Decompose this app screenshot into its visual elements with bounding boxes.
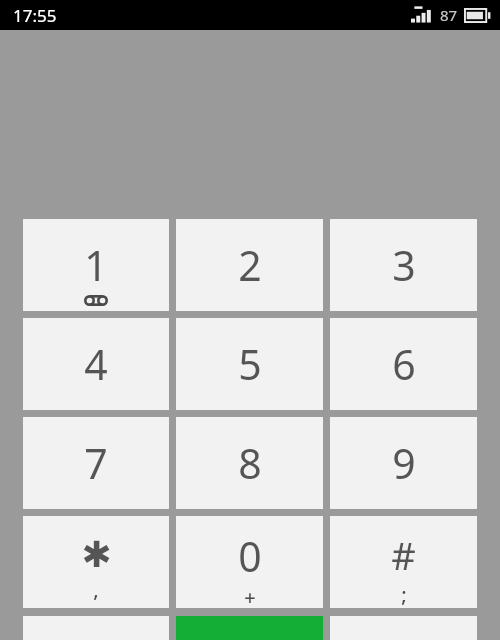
button[interactable]: 7 — [23, 417, 169, 509]
staticText: 4 — [84, 336, 108, 392]
button[interactable]: ✱ — [23, 516, 169, 608]
button[interactable]: 0 — [176, 516, 323, 608]
staticText: 1 — [84, 237, 108, 293]
staticText: 5 — [238, 336, 262, 392]
staticText: 0 — [238, 528, 262, 584]
staticText: , — [93, 576, 99, 603]
staticText: # — [391, 529, 416, 581]
button[interactable]: 3 — [330, 219, 477, 311]
staticText: + — [244, 584, 256, 608]
staticText: ✱ — [81, 534, 112, 576]
button[interactable]: 2 — [176, 219, 323, 311]
staticText: 87 — [440, 5, 458, 25]
staticText: 6 — [392, 336, 416, 392]
staticText: 2 — [238, 237, 262, 293]
staticText: 8 — [238, 435, 262, 491]
staticText: 3 — [392, 237, 416, 293]
staticText: ; — [401, 581, 407, 608]
staticText: 9 — [392, 435, 416, 491]
button[interactable]: 4 — [23, 318, 169, 410]
button[interactable]: 8 — [176, 417, 323, 509]
button[interactable]: 9 — [330, 417, 477, 509]
button[interactable]: 6 — [330, 318, 477, 410]
button[interactable]: 5 — [176, 318, 323, 410]
button[interactable]: 1 — [23, 219, 169, 311]
staticText: 17:55 — [13, 4, 57, 27]
button[interactable]: # — [330, 516, 477, 608]
staticText: 7 — [84, 435, 108, 491]
